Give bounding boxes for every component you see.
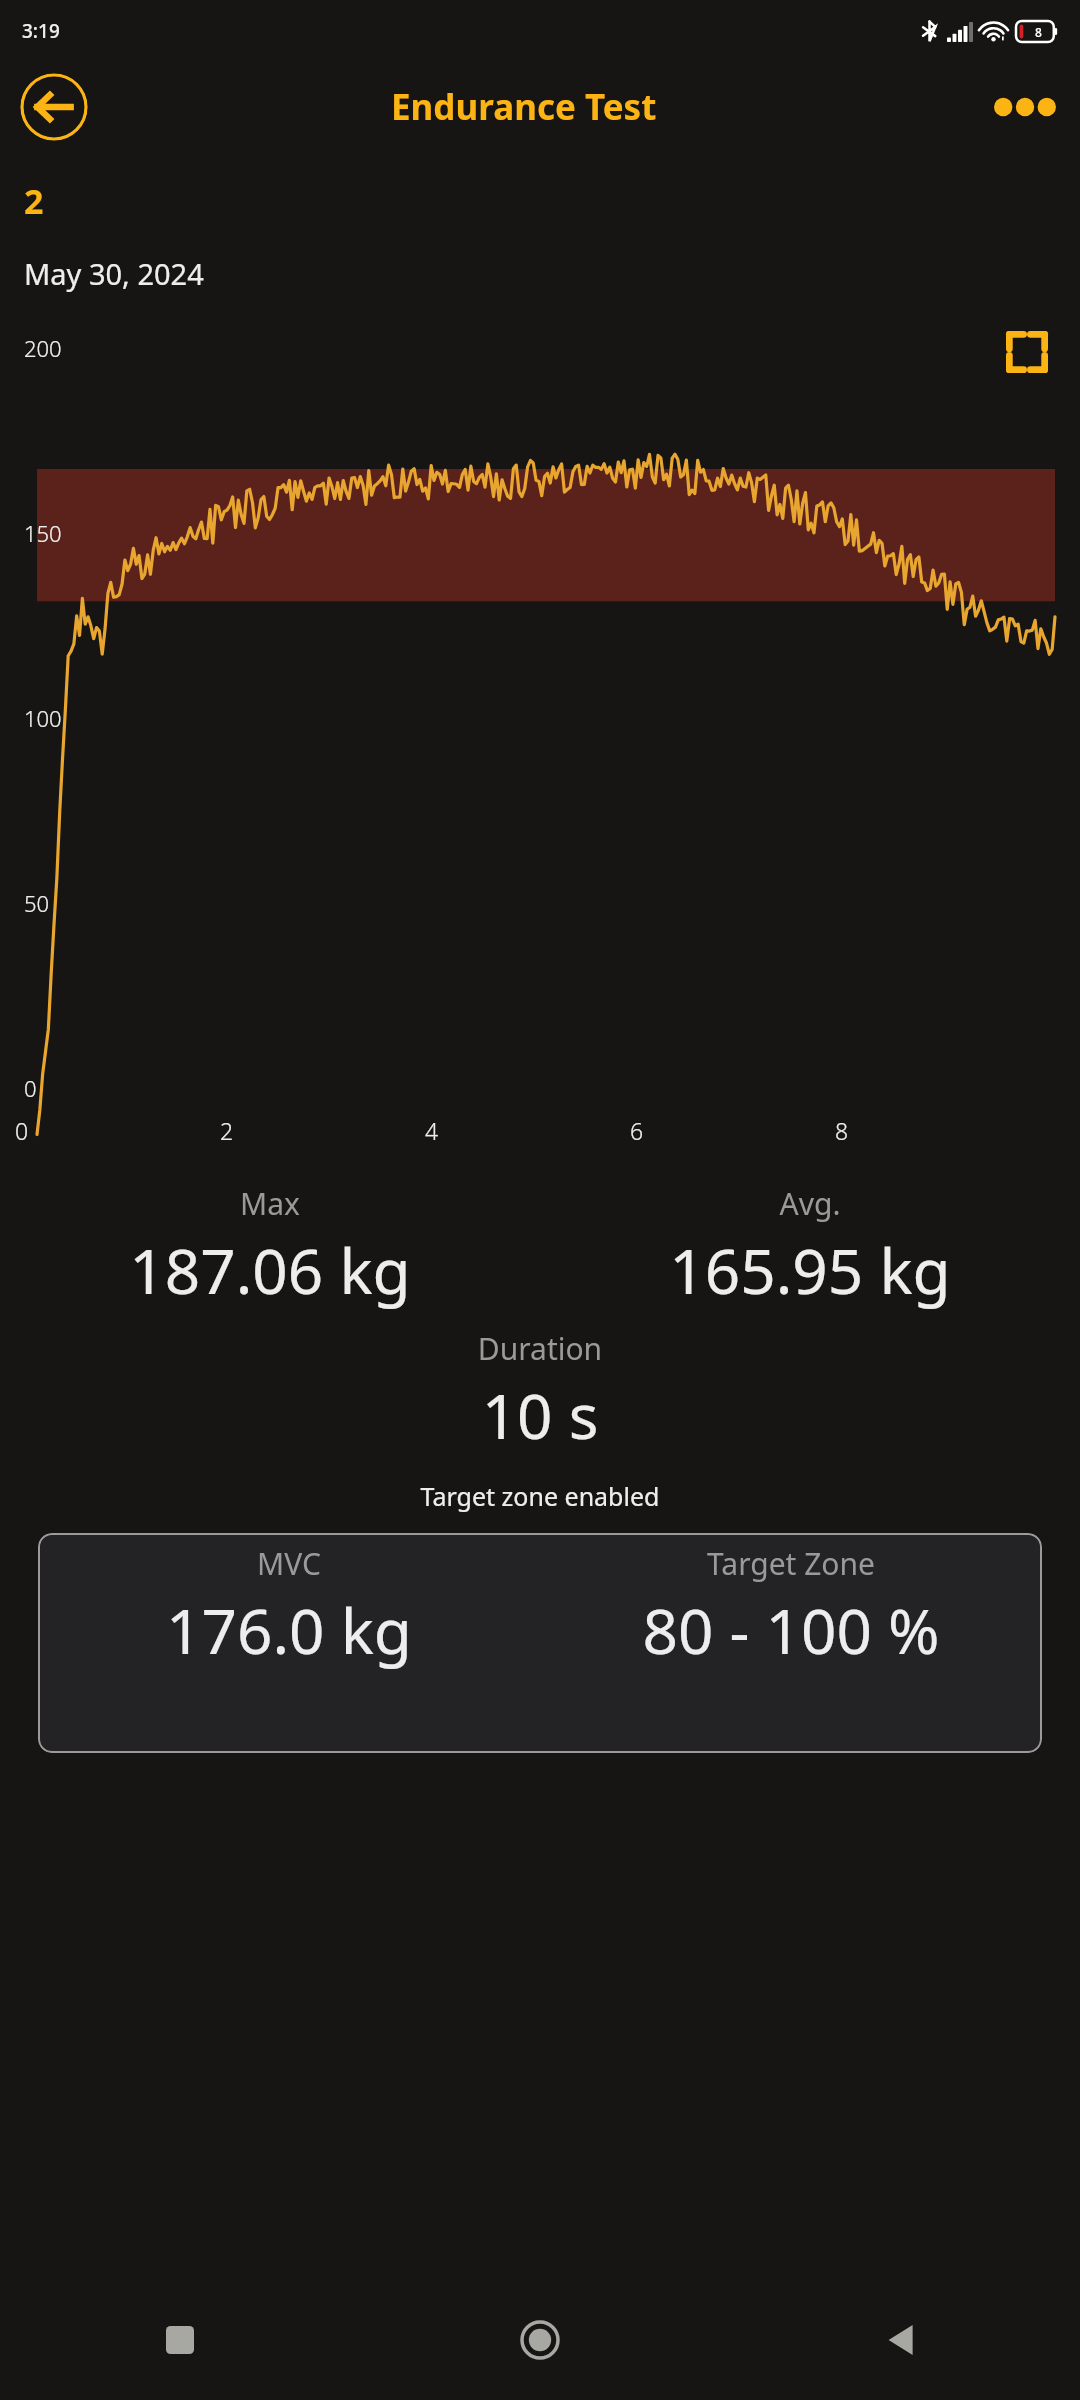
staticText: Endurance Test (391, 83, 657, 131)
button[interactable]: MVC (38, 1533, 1042, 1753)
staticText: 200 (24, 333, 62, 363)
button[interactable]: Back (720, 2280, 1080, 2400)
staticText: 176.0 kg (38, 1588, 540, 1672)
staticText: 2 (24, 178, 44, 224)
staticText: 0 (24, 1073, 37, 1103)
staticText: 165.95 kg (540, 1228, 1080, 1312)
staticText: Target zone enabled (0, 1479, 1080, 1513)
staticText: 3:19 (22, 18, 60, 44)
staticText: Duration (0, 1328, 1080, 1369)
staticText: May 30, 2024 (24, 254, 204, 293)
staticText: 187.06 kg (0, 1228, 540, 1312)
button[interactable]: More options (990, 72, 1060, 142)
staticText: Max (0, 1183, 540, 1224)
staticText: Avg. (540, 1183, 1080, 1224)
staticText: 0 (15, 1115, 29, 1146)
button[interactable]: Home (360, 2280, 720, 2400)
button[interactable]: Back (20, 73, 88, 141)
button[interactable]: Recents (0, 2280, 360, 2400)
button[interactable]: Fullscreen (996, 321, 1058, 383)
staticText: 150 (24, 518, 62, 548)
staticText: Target Zone (540, 1543, 1042, 1584)
staticText: 8 (835, 1115, 849, 1146)
staticText: 8 (1035, 24, 1042, 40)
staticText: 80 - 100 % (540, 1588, 1042, 1672)
staticText: 50 (24, 888, 50, 918)
staticText: 10 s (0, 1373, 1080, 1457)
staticText: 4 (425, 1115, 439, 1146)
staticText: 6 (630, 1115, 644, 1146)
staticText: 100 (24, 703, 62, 733)
staticText: MVC (38, 1543, 540, 1584)
staticText: 2 (220, 1115, 234, 1146)
